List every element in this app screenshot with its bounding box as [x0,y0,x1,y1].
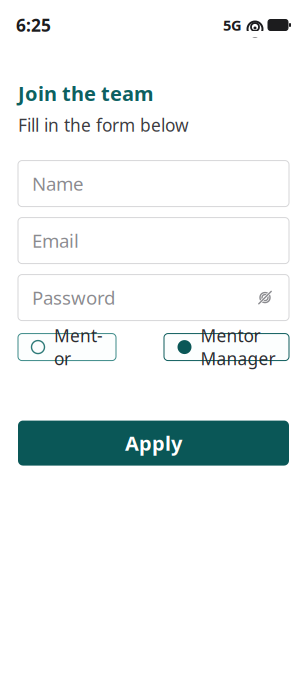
staticText: 5G [223,15,242,35]
button[interactable]: Mentor [18,334,116,361]
staticText: Password [32,285,115,310]
staticText: Email [32,228,79,253]
staticText: Fill in the form below [18,114,189,137]
staticText: Join the team [18,80,154,107]
staticText: Name [32,171,84,196]
staticText: Mentor [54,324,103,370]
staticText: Apply [125,430,182,456]
staticText: Mentor Manager [200,324,275,370]
button[interactable]: Mentor Manager [164,334,289,361]
button[interactable]: Apply [18,421,289,466]
staticText: 6:25 [16,13,51,36]
